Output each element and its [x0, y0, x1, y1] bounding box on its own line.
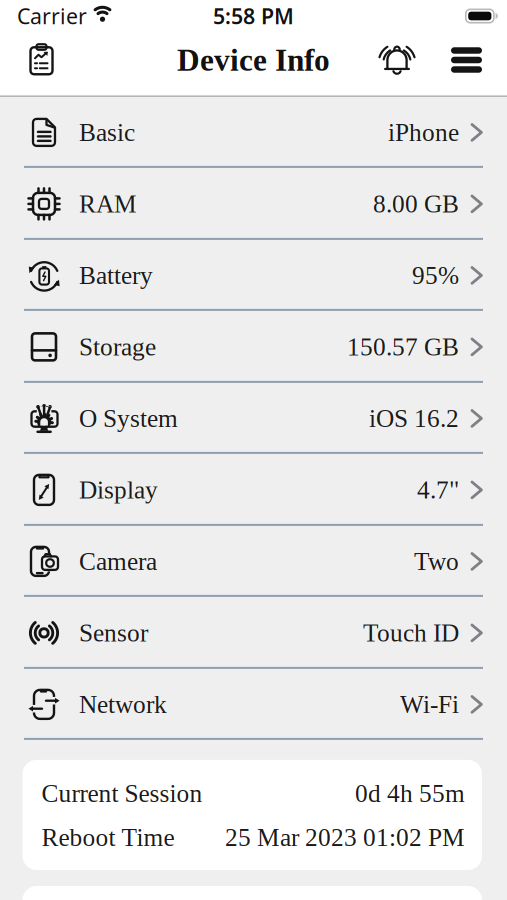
button[interactable]: Sensor — [0, 597, 507, 669]
staticText: RAM — [79, 190, 137, 218]
staticText: 5:58 PM — [213, 2, 294, 30]
button[interactable]: Battery — [0, 240, 507, 311]
staticText: iOS 16.2 — [369, 404, 459, 432]
button[interactable]: O System — [0, 383, 507, 454]
button[interactable]: Menu — [418, 44, 507, 76]
staticText: 95% — [412, 261, 459, 289]
staticText: 150.57 GB — [347, 333, 459, 361]
staticText: Touch ID — [363, 619, 459, 647]
button[interactable]: Basic — [0, 97, 507, 168]
staticText: 0d 4h 55m — [355, 779, 465, 807]
staticText: iPhone — [388, 118, 459, 146]
button[interactable]: RAM — [0, 168, 507, 240]
staticText: Carrier — [17, 2, 87, 30]
staticText: 8.00 GB — [373, 190, 459, 218]
staticText: Sensor — [79, 619, 148, 647]
button[interactable]: Notifications — [376, 41, 418, 79]
staticText: O System — [79, 404, 178, 432]
button[interactable]: Reports — [0, 43, 57, 77]
staticText: Storage — [79, 333, 156, 361]
button[interactable]: Network — [0, 669, 507, 740]
staticText: Basic — [79, 118, 135, 146]
staticText: Reboot Time — [41, 823, 174, 852]
staticText: Network — [79, 690, 167, 718]
staticText: Battery — [79, 261, 153, 289]
button[interactable]: Display — [0, 454, 507, 526]
staticText: Current Session — [41, 779, 202, 807]
staticText: Device Info — [177, 43, 330, 78]
button[interactable]: Camera — [0, 526, 507, 597]
staticText: 4.7" — [417, 476, 459, 504]
button[interactable]: Storage — [0, 311, 507, 383]
staticText: Two — [414, 547, 459, 575]
staticText: Camera — [79, 547, 157, 575]
staticText: Display — [79, 476, 158, 504]
staticText: 25 Mar 2023 01:02 PM — [225, 823, 465, 852]
staticText: Wi-Fi — [400, 690, 459, 718]
